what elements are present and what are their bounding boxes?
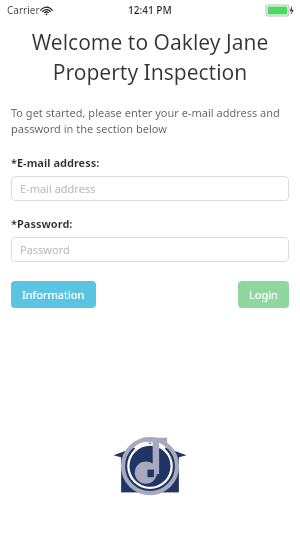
staticText: *Password: <box>11 216 73 231</box>
button[interactable]: Information <box>11 281 96 308</box>
button[interactable]: Password <box>11 237 289 262</box>
staticText: E-mail address <box>20 181 96 196</box>
staticText: Carrier <box>7 3 40 17</box>
staticText: To get started, please enter your e-mail… <box>11 105 289 137</box>
staticText: 12:41 PM <box>128 3 172 17</box>
staticText: Information <box>22 287 85 302</box>
staticText: *E-mail address: <box>11 155 100 170</box>
staticText: Login <box>249 287 278 302</box>
staticText: Password <box>20 242 70 257</box>
staticText: Welcome to Oakley Jane Property Inspecti… <box>12 28 288 86</box>
button[interactable]: Login <box>238 281 289 308</box>
button[interactable]: E-mail address <box>11 176 289 201</box>
